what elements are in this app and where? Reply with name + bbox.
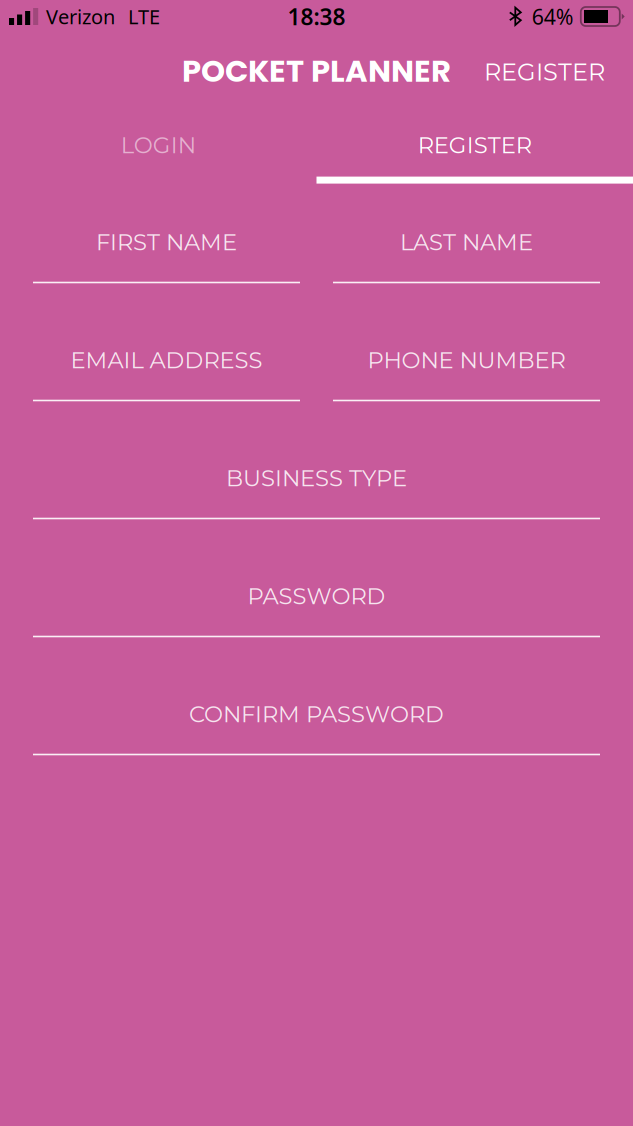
staticText: FIRST NAME	[96, 228, 237, 256]
staticText: REGISTER	[418, 131, 532, 159]
button[interactable]: FIRST NAME	[33, 183, 300, 301]
button[interactable]: EMAIL ADDRESS	[33, 301, 300, 419]
button[interactable]: CONFIRM PASSWORD	[33, 655, 600, 773]
staticText: BUSINESS TYPE	[226, 464, 407, 492]
button[interactable]: REGISTER	[316, 106, 633, 183]
staticText: EMAIL ADDRESS	[70, 346, 262, 374]
button[interactable]: REGISTER	[472, 45, 633, 99]
button[interactable]: BUSINESS TYPE	[33, 419, 600, 537]
staticText: POCKET PLANNER	[182, 49, 451, 92]
staticText: PHONE NUMBER	[367, 346, 565, 374]
staticText: 18:38	[287, 1, 345, 31]
staticText: LOGIN	[121, 131, 196, 159]
button[interactable]: PASSWORD	[33, 537, 600, 655]
staticText: CONFIRM PASSWORD	[189, 700, 444, 728]
staticText: REGISTER	[484, 57, 605, 87]
button[interactable]: LAST NAME	[333, 183, 600, 301]
staticText: LAST NAME	[400, 228, 533, 256]
staticText: PASSWORD	[247, 582, 385, 610]
button[interactable]: PHONE NUMBER	[333, 301, 600, 419]
button[interactable]: LOGIN	[0, 106, 316, 183]
staticText: Verizon	[46, 3, 115, 30]
staticText: 64%	[532, 2, 574, 31]
staticText: LTE	[128, 3, 160, 30]
